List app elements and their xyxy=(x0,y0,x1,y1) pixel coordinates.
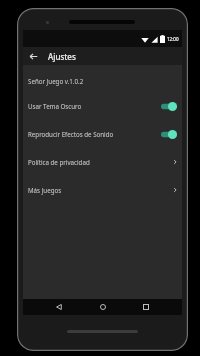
staticText: Política de privacidad xyxy=(28,158,173,166)
staticText: Usar Tema Oscuro xyxy=(28,102,161,110)
staticText: Ajustes xyxy=(48,51,76,62)
button[interactable]: Reproducir Efectos de Sonido xyxy=(23,120,182,148)
button[interactable]: Home xyxy=(96,300,110,314)
staticText: 12:00 xyxy=(167,36,179,42)
button[interactable]: Back xyxy=(25,48,41,64)
button[interactable]: Back xyxy=(52,300,66,314)
button[interactable]: Recents xyxy=(139,300,153,314)
staticText: Más Juegos xyxy=(28,186,173,194)
staticText: Señor Juego v.1.0.2 xyxy=(28,77,84,85)
button[interactable]: Usar Tema Oscuro xyxy=(23,92,182,120)
button[interactable]: Política de privacidad xyxy=(23,148,182,176)
staticText: Reproducir Efectos de Sonido xyxy=(28,130,161,138)
button[interactable]: Señor Juego v.1.0.2 xyxy=(23,70,182,92)
button[interactable]: Más Juegos xyxy=(23,176,182,204)
